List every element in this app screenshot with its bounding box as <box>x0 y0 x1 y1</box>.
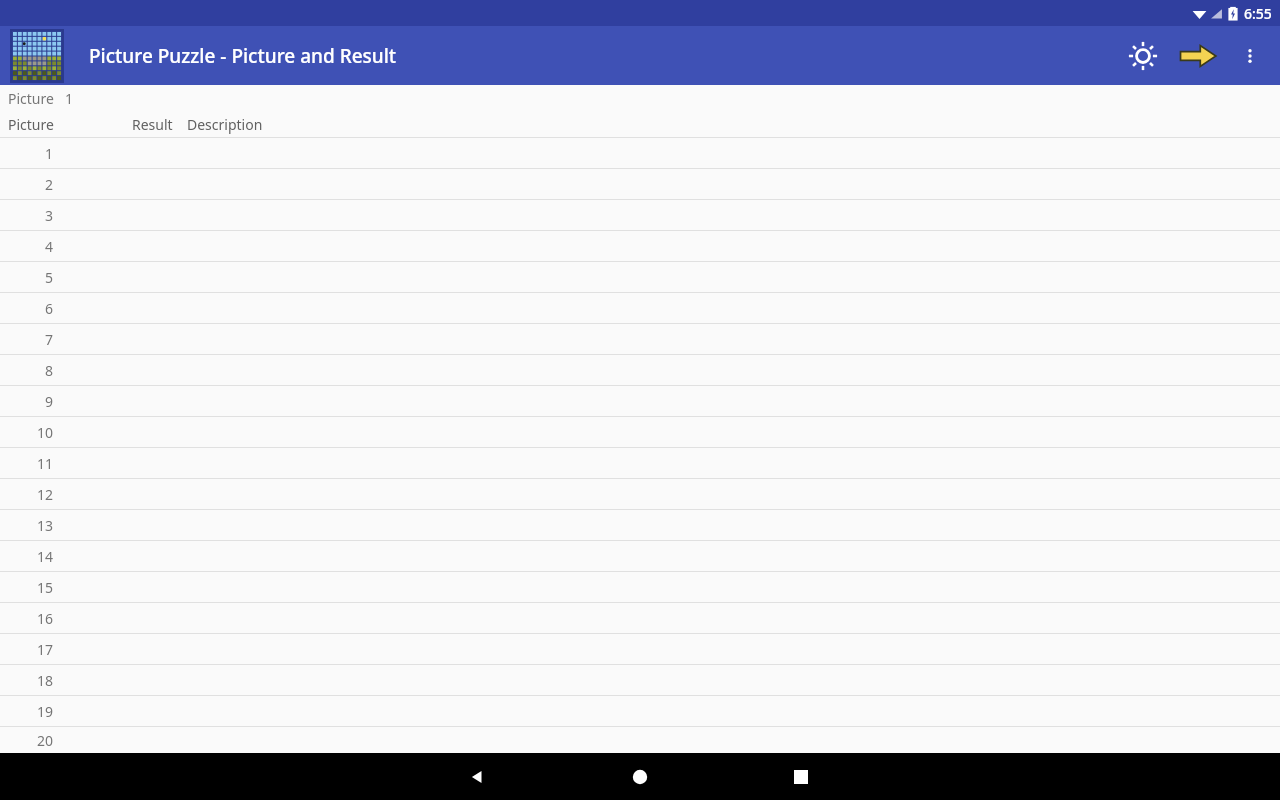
staticText: 14 <box>36 547 53 566</box>
button[interactable]: 20 <box>0 727 1280 753</box>
staticText: 19 <box>36 702 53 721</box>
button[interactable]: 3 <box>0 200 1280 231</box>
button[interactable]: 5 <box>0 262 1280 293</box>
staticText: Result <box>132 115 173 134</box>
staticText: 20 <box>36 731 53 750</box>
staticText: 4 <box>44 237 53 256</box>
button[interactable]: Next <box>1174 32 1222 80</box>
button[interactable]: 9 <box>0 386 1280 417</box>
staticText: 12 <box>36 485 53 504</box>
staticText: 7 <box>44 330 53 349</box>
staticText: 13 <box>36 516 53 535</box>
button[interactable]: 13 <box>0 510 1280 541</box>
button[interactable]: 19 <box>0 696 1280 727</box>
staticText: 6:55 <box>1244 4 1272 23</box>
staticText: 17 <box>36 640 53 659</box>
staticText: 3 <box>44 206 53 225</box>
staticText: 18 <box>36 671 53 690</box>
button[interactable]: 2 <box>0 169 1280 200</box>
staticText: Picture <box>8 115 54 134</box>
button[interactable]: 12 <box>0 479 1280 510</box>
staticText: 16 <box>36 609 53 628</box>
staticText: 1 <box>65 89 74 108</box>
button[interactable]: 7 <box>0 324 1280 355</box>
staticText: 5 <box>44 268 53 287</box>
button[interactable]: 14 <box>0 541 1280 572</box>
staticText: 6 <box>44 299 53 318</box>
staticText: 11 <box>36 454 53 473</box>
button[interactable]: 17 <box>0 634 1280 665</box>
button[interactable]: 15 <box>0 572 1280 603</box>
staticText: 2 <box>44 175 53 194</box>
button[interactable]: Home <box>616 753 664 800</box>
staticText: 8 <box>44 361 53 380</box>
button[interactable]: 10 <box>0 417 1280 448</box>
button[interactable]: 6 <box>0 293 1280 324</box>
button[interactable]: Brightness <box>1119 32 1167 80</box>
staticText: 1 <box>44 144 53 163</box>
button[interactable]: 16 <box>0 603 1280 634</box>
button[interactable]: 8 <box>0 355 1280 386</box>
staticText: Picture <box>8 89 54 108</box>
staticText: Description <box>187 115 263 134</box>
staticText: Picture Puzzle - Picture and Result <box>89 43 397 69</box>
button[interactable]: 11 <box>0 448 1280 479</box>
button[interactable]: Recents <box>777 753 825 800</box>
button[interactable]: Picture <box>0 85 1280 111</box>
staticText: 10 <box>36 423 53 442</box>
button[interactable]: More options <box>1226 32 1274 80</box>
button[interactable]: Back <box>453 753 501 800</box>
button[interactable]: 18 <box>0 665 1280 696</box>
staticText: 15 <box>36 578 53 597</box>
button[interactable]: 4 <box>0 231 1280 262</box>
staticText: 9 <box>44 392 53 411</box>
button[interactable]: 1 <box>0 138 1280 169</box>
